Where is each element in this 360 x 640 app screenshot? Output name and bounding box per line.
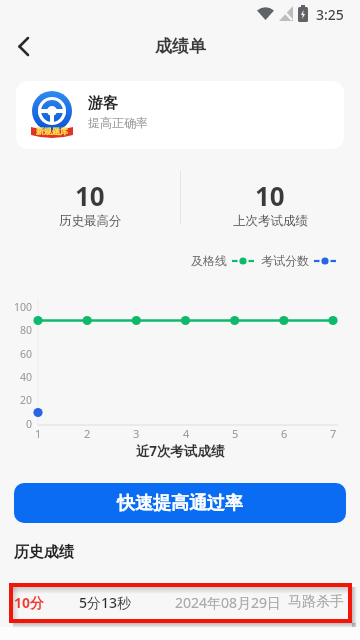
staticText: 10 (75, 178, 105, 213)
staticText: 游客 (88, 94, 118, 113)
staticText: 考试分数 (261, 253, 309, 268)
button[interactable]: 快速提高通过率 (14, 483, 346, 523)
staticText: 5分13秒 (79, 593, 132, 612)
staticText: 1 (35, 426, 42, 441)
staticText: 4 (183, 426, 190, 441)
staticText: 及格线 (191, 253, 227, 268)
staticText: 3 (133, 426, 140, 441)
staticText: 历史成绩 (14, 543, 74, 562)
staticText: 20 (20, 393, 33, 407)
staticText: 5 (232, 426, 239, 441)
button[interactable] (12, 30, 44, 62)
staticText: 10分 (14, 593, 45, 612)
staticText: 7 (330, 426, 337, 441)
staticText: 成绩单 (155, 36, 206, 57)
button[interactable]: 10分 (9, 583, 352, 623)
staticText: 80 (20, 323, 33, 337)
staticText: 6 (281, 426, 288, 441)
staticText: 2 (84, 426, 91, 441)
staticText: 40 (20, 370, 33, 384)
staticText: 快速提高通过率 (117, 492, 243, 515)
staticText: 60 (20, 347, 33, 361)
staticText: 2024年08月29日 (175, 593, 282, 612)
staticText: 3:25 (316, 5, 344, 24)
staticText: 10 (255, 178, 285, 213)
staticText: 上次考试成绩 (233, 213, 308, 229)
staticText: 提高正确率 (88, 115, 148, 130)
staticText: 0 (26, 417, 33, 431)
staticText: 近7次考试成绩 (0, 442, 360, 460)
staticText: 新规题库 (36, 126, 68, 136)
staticText: 100 (14, 300, 33, 314)
staticText: 马路杀手 (288, 593, 344, 611)
button[interactable]: 新规题库 (16, 81, 344, 149)
staticText: 历史最高分 (59, 213, 122, 229)
